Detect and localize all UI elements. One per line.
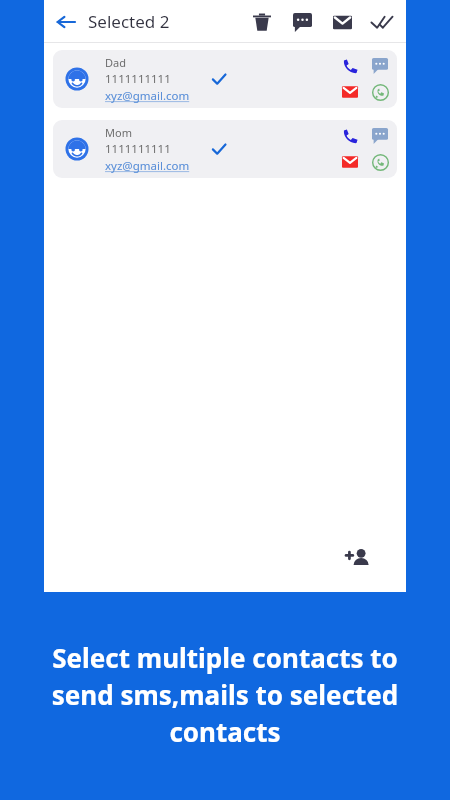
- staticText: 1111111111: [105, 141, 171, 157]
- button[interactable]: Message: [369, 125, 391, 147]
- staticText: 1111111111: [105, 71, 171, 87]
- staticText: xyz@gmail.com: [105, 88, 190, 104]
- staticText: Selected 2: [88, 10, 170, 33]
- button[interactable]: Email: [339, 151, 361, 173]
- button[interactable]: Delete: [242, 2, 282, 42]
- button[interactable]: Message: [369, 55, 391, 77]
- button[interactable]: Send mail: [322, 2, 362, 42]
- staticText: xyz@gmail.com: [105, 158, 190, 174]
- button[interactable]: Call: [339, 125, 361, 147]
- button[interactable]: Call: [339, 55, 361, 77]
- button[interactable]: Add contact: [332, 532, 384, 584]
- staticText: Mom: [105, 125, 132, 140]
- staticText: Dad: [105, 55, 126, 70]
- button[interactable]: Email: [339, 81, 361, 103]
- button[interactable]: Send SMS: [282, 2, 322, 42]
- button[interactable]: Back: [44, 0, 88, 43]
- button[interactable]: Dad: [53, 50, 397, 108]
- button[interactable]: WhatsApp: [369, 151, 391, 173]
- button[interactable]: Select all: [362, 2, 402, 42]
- button[interactable]: Mom: [53, 120, 397, 178]
- staticText: Select multiple contacts to send sms,mai…: [18, 640, 432, 750]
- button[interactable]: WhatsApp: [369, 81, 391, 103]
